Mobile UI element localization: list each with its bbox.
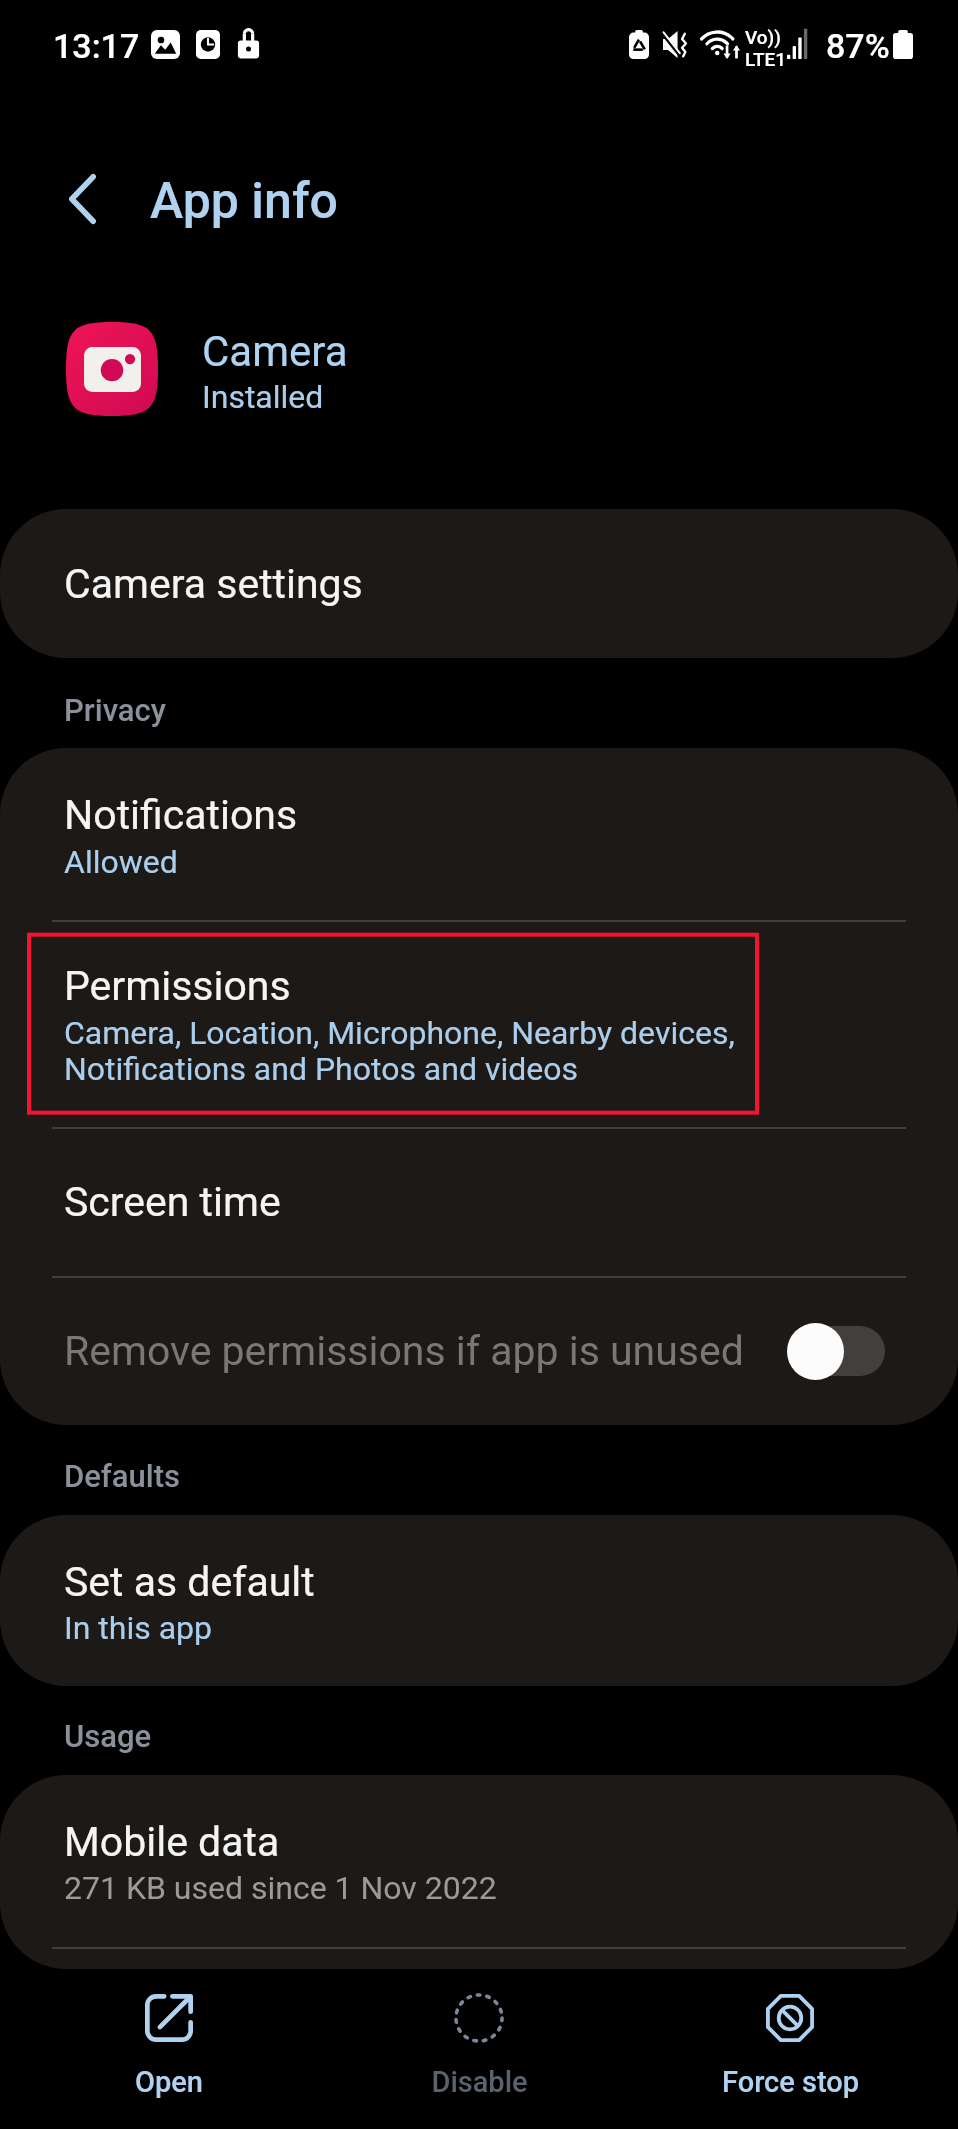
- staticText: Camera settings: [64, 560, 363, 608]
- staticText: Remove permissions if app is unused: [64, 1327, 787, 1375]
- staticText: Allowed: [64, 843, 178, 881]
- button[interactable]: Screen time: [0, 1127, 958, 1276]
- staticText: Force stop: [722, 2065, 859, 2099]
- staticText: Usage: [64, 1718, 152, 1754]
- staticText: 13:17: [53, 26, 140, 66]
- staticText: Vo)): [745, 26, 781, 48]
- staticText: Set as default: [64, 1558, 315, 1606]
- button[interactable]: Force stop: [630, 1969, 950, 2129]
- staticText: In this app: [64, 1609, 212, 1647]
- staticText: 271 KB used since 1 Nov 2022: [64, 1869, 497, 1907]
- staticText: Installed: [202, 378, 324, 416]
- button[interactable]: Camera settings: [0, 509, 958, 658]
- staticText: Defaults: [64, 1458, 180, 1494]
- staticText: Camera, Location, Microphone, Nearby dev…: [64, 1014, 735, 1088]
- button[interactable]: Open: [9, 1969, 329, 2129]
- staticText: Open: [135, 2065, 203, 2099]
- staticText: Camera: [202, 327, 348, 376]
- staticText: Notifications: [64, 791, 298, 839]
- staticText: 87%: [826, 26, 890, 66]
- staticText: Mobile data: [64, 1818, 280, 1866]
- staticText: Permissions: [64, 962, 291, 1010]
- staticText: Disable: [431, 2065, 528, 2099]
- button[interactable]: Permissions: [0, 920, 958, 1088]
- button[interactable]: Back: [52, 169, 112, 229]
- button[interactable]: Mobile data: [0, 1775, 958, 1907]
- button[interactable]: Disable: [319, 1969, 639, 2129]
- staticText: Privacy: [64, 692, 166, 728]
- staticText: LTE1: [745, 48, 787, 70]
- button[interactable]: Remove permissions if app is unused: [0, 1276, 958, 1425]
- button[interactable]: Notifications: [0, 748, 958, 881]
- staticText: App info: [150, 172, 338, 231]
- button[interactable]: Set as default: [0, 1515, 958, 1647]
- staticText: Screen time: [64, 1178, 281, 1226]
